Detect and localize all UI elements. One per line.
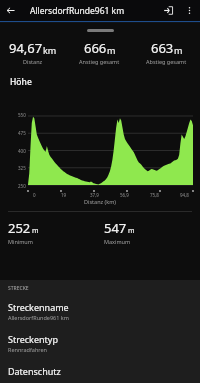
button[interactable]: 252: [8, 219, 104, 245]
button[interactable]: More options: [179, 0, 200, 21]
staticText: 56,9: [120, 192, 129, 198]
button[interactable]: Export: [158, 0, 179, 21]
button[interactable]: Streckenname: [0, 296, 200, 328]
staticText: m: [174, 44, 183, 56]
staticText: Höhe: [10, 76, 32, 88]
staticText: 0: [33, 192, 36, 198]
staticText: Anstieg gesamt: [79, 58, 120, 65]
staticText: m: [128, 226, 135, 236]
staticText: 37,9: [90, 192, 99, 198]
staticText: 547: [104, 219, 127, 237]
staticText: Distanz: [23, 58, 43, 65]
staticText: Streckentyp: [8, 333, 58, 345]
button[interactable]: 666: [66, 39, 133, 65]
staticText: m: [32, 226, 39, 236]
button[interactable]: Datenschutz: [0, 360, 200, 383]
staticText: 75,8: [150, 192, 159, 198]
button[interactable]: Streckentyp: [0, 328, 200, 360]
button[interactable]: 663: [133, 39, 200, 65]
staticText: 400: [18, 148, 26, 154]
staticText: STRECKE: [8, 285, 29, 292]
staticText: 550: [18, 112, 26, 118]
staticText: 475: [18, 130, 26, 136]
staticText: 94,8: [180, 192, 189, 198]
staticText: 250: [18, 183, 26, 189]
staticText: 325: [18, 165, 26, 171]
staticText: Maximum: [104, 238, 131, 245]
staticText: 19: [61, 192, 67, 198]
staticText: AllersdorfRunde961 km: [30, 5, 158, 17]
button[interactable]: Back: [0, 0, 21, 21]
staticText: Minimum: [8, 238, 33, 245]
staticText: km: [43, 44, 57, 56]
staticText: Abstieg gesamt: [146, 58, 187, 65]
button[interactable]: 547: [104, 219, 200, 245]
staticText: 94,67: [9, 39, 43, 57]
staticText: Distanz (km): [84, 198, 116, 205]
staticText: 666: [84, 39, 107, 57]
staticText: AllersdorfRunde961 km: [8, 314, 69, 321]
staticText: 663: [151, 39, 174, 57]
staticText: m: [107, 44, 116, 56]
button[interactable]: 94,67: [0, 39, 66, 65]
staticText: Rennradfahren: [8, 346, 47, 353]
staticText: Streckenname: [8, 301, 69, 313]
staticText: 252: [8, 219, 31, 237]
staticText: Datenschutz: [8, 365, 61, 377]
